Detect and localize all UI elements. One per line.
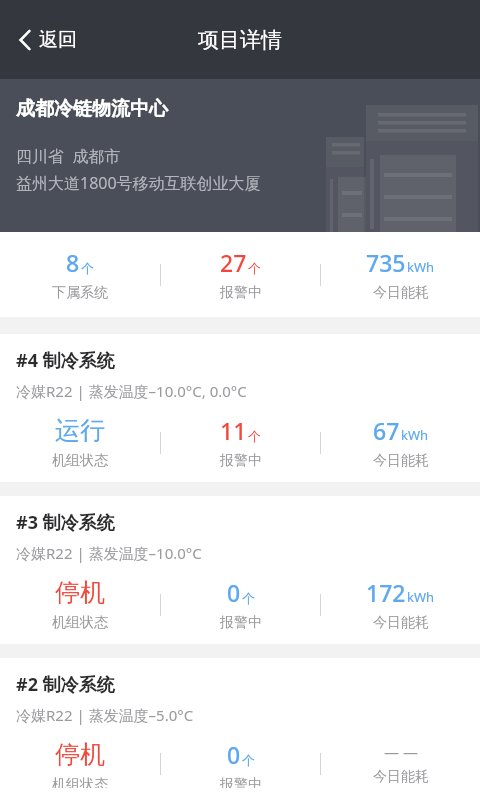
staticText: 27: [220, 247, 247, 278]
staticText: 个: [242, 752, 255, 768]
staticText: 益州大道1800号移动互联创业大厦: [16, 172, 261, 194]
staticText: 67: [373, 415, 400, 446]
staticText: 停机: [55, 739, 105, 770]
staticText: 报警中: [220, 284, 262, 302]
button[interactable]: 27: [161, 247, 320, 302]
staticText: #4 制冷系统: [16, 348, 115, 373]
staticText: 返回: [39, 28, 77, 52]
staticText: 8: [66, 247, 80, 278]
button[interactable]: 67: [321, 415, 480, 470]
staticText: 个: [242, 590, 255, 606]
staticText: 个: [248, 260, 261, 276]
staticText: 0: [227, 577, 241, 608]
staticText: — —: [384, 742, 418, 762]
staticText: 735: [366, 247, 406, 278]
staticText: 个: [248, 428, 261, 444]
staticText: 11: [220, 415, 247, 446]
staticText: 冷媒R22 | 蒸发温度–10.0°C, 0.0°C: [16, 381, 247, 401]
button[interactable]: 0: [161, 577, 320, 632]
staticText: #2 制冷系统: [16, 672, 115, 697]
staticText: 成都冷链物流中心: [16, 97, 168, 121]
button[interactable]: 172: [321, 577, 480, 632]
button[interactable]: 11: [161, 415, 320, 470]
staticText: kWh: [401, 426, 429, 444]
staticText: 项目详情: [198, 27, 282, 53]
staticText: 四川省 成都市: [16, 145, 121, 167]
staticText: 机组状态: [52, 614, 108, 632]
staticText: 今日能耗: [373, 614, 429, 632]
staticText: 报警中: [220, 452, 262, 470]
staticText: 172: [366, 577, 406, 608]
button[interactable]: 停机: [0, 739, 160, 788]
staticText: kWh: [407, 258, 435, 276]
staticText: 机组状态: [52, 776, 108, 788]
staticText: kWh: [407, 588, 435, 606]
staticText: 今日能耗: [373, 768, 429, 786]
staticText: #3 制冷系统: [16, 510, 115, 535]
button[interactable]: — —: [321, 742, 480, 786]
staticText: 机组状态: [52, 452, 108, 470]
staticText: 冷媒R22 | 蒸发温度–5.0°C: [16, 705, 194, 725]
staticText: 运行: [55, 415, 105, 446]
button[interactable]: 0: [161, 739, 320, 788]
staticText: 冷媒R22 | 蒸发温度–10.0°C: [16, 543, 202, 563]
button[interactable]: 返回: [12, 20, 83, 60]
button[interactable]: 735: [321, 247, 480, 302]
button[interactable]: #4 制冷系统: [0, 334, 480, 482]
button[interactable]: 停机: [0, 577, 160, 632]
staticText: 今日能耗: [373, 284, 429, 302]
staticText: 个: [81, 260, 94, 276]
staticText: 报警中: [220, 776, 262, 788]
staticText: 报警中: [220, 614, 262, 632]
staticText: 今日能耗: [373, 452, 429, 470]
button[interactable]: #2 制冷系统: [0, 658, 480, 800]
button[interactable]: #3 制冷系统: [0, 496, 480, 644]
button[interactable]: 8: [0, 247, 160, 302]
button[interactable]: 运行: [0, 415, 160, 470]
staticText: 停机: [55, 577, 105, 608]
staticText: 下属系统: [52, 284, 108, 302]
staticText: 0: [227, 739, 241, 770]
